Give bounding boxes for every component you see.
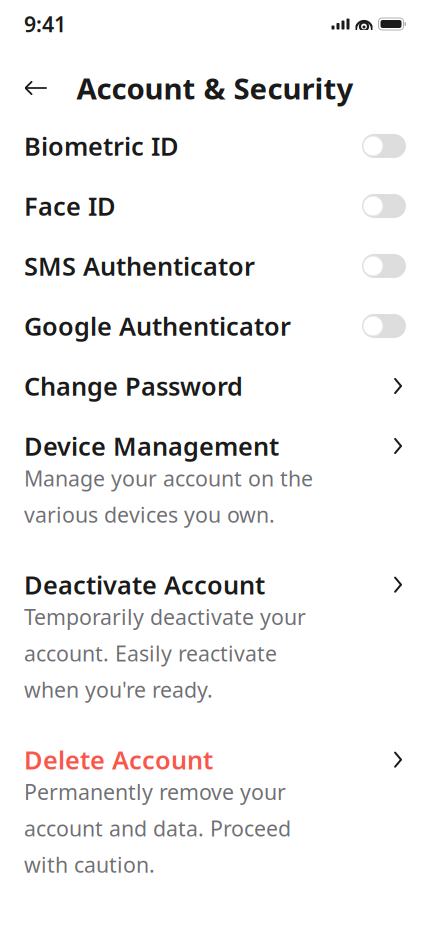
- staticText: Permanently remove your account and data…: [24, 778, 291, 879]
- staticText: Temporarily deactivate your account. Eas…: [24, 603, 306, 704]
- staticText: Google Authenticator: [24, 309, 291, 343]
- staticText: Delete Account: [24, 743, 213, 776]
- staticText: Device Management: [24, 429, 279, 463]
- button[interactable]: Deactivate Account: [0, 555, 430, 730]
- staticText: Manage your account on the various devic…: [24, 464, 313, 529]
- staticText: 9:41: [24, 10, 66, 38]
- staticText: Deactivate Account: [24, 568, 265, 601]
- staticText: Account & Security: [76, 68, 353, 107]
- staticText: SMS Authenticator: [24, 249, 255, 283]
- button[interactable]: Back: [14, 66, 58, 110]
- button[interactable]: Device Management: [0, 416, 430, 555]
- button[interactable]: Change Password: [0, 356, 430, 416]
- button[interactable]: Face ID: [0, 176, 430, 236]
- button[interactable]: Delete Account: [0, 730, 430, 905]
- button[interactable]: Biometric ID: [0, 116, 430, 176]
- staticText: Change Password: [24, 369, 243, 403]
- staticText: Biometric ID: [24, 129, 179, 163]
- staticText: Face ID: [24, 189, 116, 223]
- button[interactable]: Google Authenticator: [0, 296, 430, 356]
- button[interactable]: SMS Authenticator: [0, 236, 430, 296]
